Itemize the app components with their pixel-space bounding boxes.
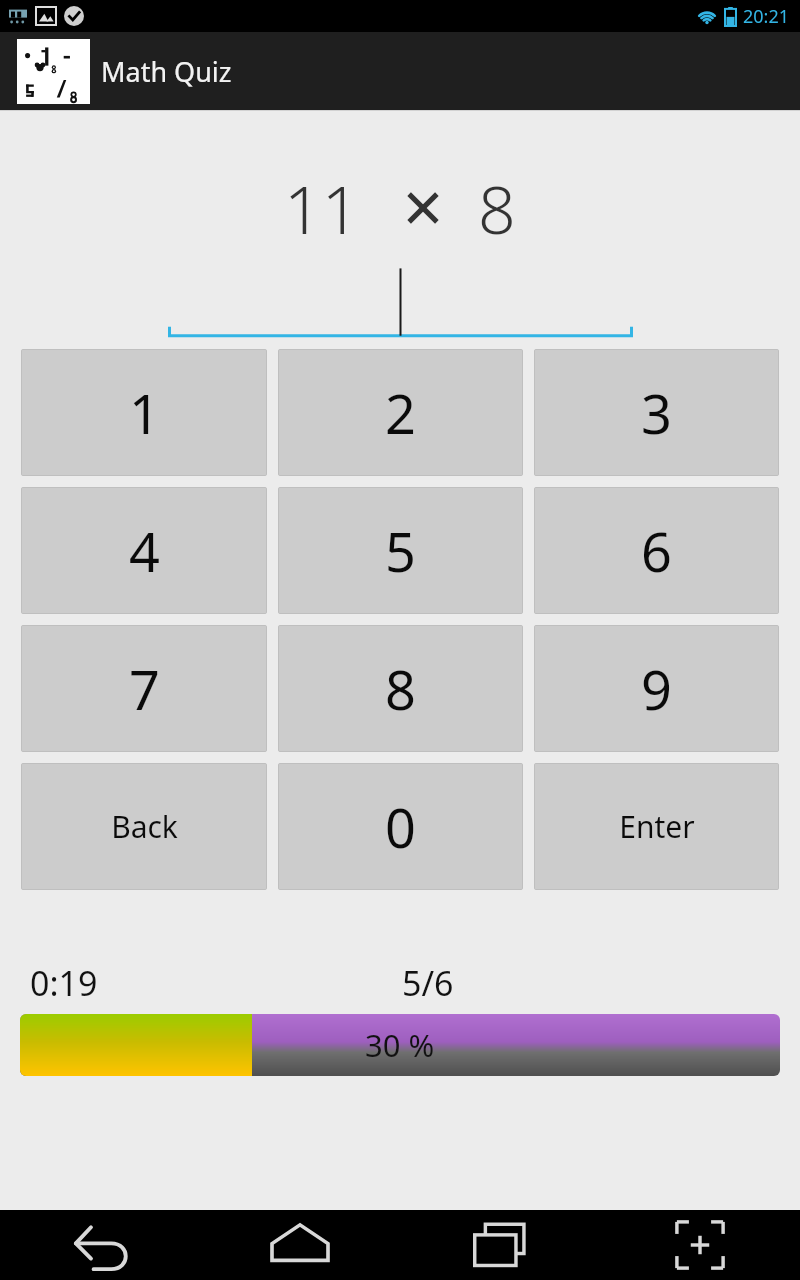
button[interactable]: Enter [534, 763, 779, 890]
button[interactable]: 30 % [20, 1014, 780, 1076]
button[interactable]: 4 [21, 487, 267, 614]
staticText: Math Quiz [101, 53, 232, 90]
staticText: 0 [385, 790, 416, 864]
button[interactable]: Screenshot [600, 1210, 800, 1280]
staticText: 7 [129, 652, 160, 726]
staticText: 3 [641, 376, 672, 450]
staticText: 1 [129, 376, 160, 450]
button[interactable]: Back [0, 1210, 200, 1280]
button[interactable]: 8 [278, 625, 523, 752]
staticText: 11 [284, 163, 360, 253]
staticText: 5/6 [402, 960, 454, 1006]
staticText: 0:19 [30, 960, 98, 1006]
staticText: 8 [478, 163, 516, 253]
button[interactable]: 1 [21, 349, 267, 476]
staticText: Back [111, 806, 178, 847]
button[interactable]: 9 [534, 625, 779, 752]
button[interactable]: 5 [278, 487, 523, 614]
staticText: 30 % [365, 1024, 435, 1066]
staticText: 9 [641, 652, 672, 726]
button[interactable]: Recent apps [400, 1210, 600, 1280]
other: Math Quiz app icon [17, 39, 90, 104]
staticText: 5 [385, 514, 416, 588]
staticText: Enter [619, 806, 695, 847]
staticText: 2 [385, 376, 416, 450]
staticText: 20:21 [743, 4, 790, 29]
button[interactable]: Home [200, 1210, 400, 1280]
staticText: 6 [641, 514, 672, 588]
button[interactable]: Back [21, 763, 267, 890]
staticText: 4 [129, 514, 160, 588]
button[interactable]: 0 [278, 763, 523, 890]
button[interactable]: 7 [21, 625, 267, 752]
button[interactable]: 3 [534, 349, 779, 476]
button[interactable]: 2 [278, 349, 523, 476]
staticText: 8 [385, 652, 416, 726]
button[interactable]: 6 [534, 487, 779, 614]
